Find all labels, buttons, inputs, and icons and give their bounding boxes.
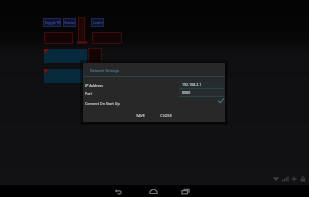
button[interactable]: CLOSE	[155, 110, 177, 120]
staticText: Connect On Start Up	[85, 101, 120, 106]
button[interactable]: Learn	[91, 18, 104, 27]
staticText: 8080	[182, 90, 191, 95]
staticText: SAVE	[136, 113, 145, 118]
button[interactable]: 8080	[179, 89, 224, 97]
button[interactable]: 192.168.2.1	[179, 81, 224, 89]
staticText: Toggle FX	[44, 20, 61, 25]
staticText: 192.168.2.1	[182, 82, 202, 87]
staticText: Network Settings	[90, 68, 120, 73]
staticText: Status	[64, 20, 75, 25]
staticText: Learn	[93, 20, 103, 25]
button[interactable]: Back	[112, 185, 124, 197]
button[interactable]: Toggle FX	[43, 18, 61, 27]
button[interactable]: Status	[63, 18, 76, 27]
staticText: CLOSE	[160, 113, 172, 118]
staticText: Port	[85, 91, 93, 96]
button[interactable]: Connect on start up	[217, 97, 224, 104]
button[interactable]: SAVE	[129, 110, 151, 120]
button[interactable]: Home	[147, 185, 159, 197]
staticText: IP Address	[85, 83, 103, 88]
button[interactable]: Recent apps	[179, 185, 191, 197]
button[interactable]	[44, 69, 87, 83]
button[interactable]	[44, 49, 87, 63]
